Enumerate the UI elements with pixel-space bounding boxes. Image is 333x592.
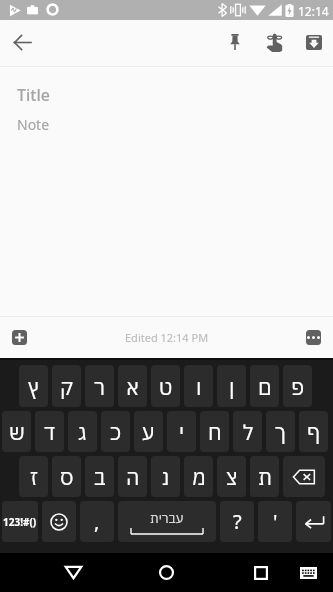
staticText: א	[126, 373, 140, 400]
staticText: 123!#()	[3, 515, 37, 529]
staticText: ל	[243, 418, 253, 445]
staticText: '	[273, 508, 278, 535]
staticText: צ	[226, 463, 238, 490]
button[interactable]: ,	[80, 501, 114, 542]
button[interactable]: פ	[283, 365, 312, 407]
button[interactable]: More options	[299, 323, 328, 352]
button[interactable]: ט	[151, 365, 180, 407]
button[interactable]: ה	[118, 456, 147, 497]
staticText: ת	[258, 463, 272, 490]
button[interactable]: '	[258, 501, 292, 542]
staticText: Note	[17, 115, 50, 134]
button[interactable]: ח	[200, 411, 229, 452]
staticText: ק	[60, 373, 73, 400]
staticText: ם	[258, 373, 272, 400]
button[interactable]: צ	[217, 456, 246, 497]
button[interactable]	[283, 456, 325, 497]
button[interactable]: Recents	[243, 555, 278, 590]
staticText: ב	[94, 463, 106, 490]
button[interactable]: Back	[5, 25, 39, 59]
button[interactable]: Back	[56, 555, 91, 590]
button[interactable]: ק	[52, 365, 81, 407]
staticText: ש	[9, 418, 25, 445]
staticText: ז	[30, 463, 38, 490]
staticText: ח	[208, 418, 222, 445]
button[interactable]: ד	[35, 411, 64, 452]
button[interactable]: ג	[68, 411, 97, 452]
button[interactable]: ת	[250, 456, 279, 497]
staticText: פ	[291, 373, 305, 400]
staticText: ו	[196, 373, 202, 400]
button[interactable]: ב	[85, 456, 114, 497]
staticText: י	[179, 418, 185, 445]
staticText: כ	[110, 418, 122, 445]
staticText: ר	[94, 373, 106, 400]
button[interactable]	[296, 501, 331, 542]
button[interactable]: א	[118, 365, 147, 407]
button[interactable]: Home	[149, 555, 184, 590]
staticText: עברית	[150, 510, 184, 527]
button[interactable]: כ	[101, 411, 130, 452]
button[interactable]: Show keyboard	[291, 555, 326, 590]
staticText: ?	[233, 508, 242, 535]
staticText: Title	[17, 84, 50, 106]
button[interactable]: ז	[19, 456, 48, 497]
button[interactable]: 123!#()	[2, 501, 38, 542]
staticText: ד	[44, 418, 56, 445]
button[interactable]: Remind me	[257, 25, 291, 59]
button[interactable]: ס	[52, 456, 81, 497]
staticText: ן	[229, 373, 235, 400]
button[interactable]: נ	[151, 456, 180, 497]
button[interactable]: ?	[220, 501, 254, 542]
button[interactable]: ל	[233, 411, 262, 452]
button[interactable]: Add	[5, 323, 34, 352]
staticText: ,	[94, 508, 100, 535]
button[interactable]: ע	[134, 411, 163, 452]
button[interactable]: ץ	[19, 365, 48, 407]
button[interactable]	[42, 501, 76, 542]
button[interactable]: ש	[2, 411, 31, 452]
staticText: ף	[307, 418, 321, 445]
button[interactable]: ן	[217, 365, 246, 407]
button[interactable]: ף	[299, 411, 328, 452]
button[interactable]: ו	[184, 365, 213, 407]
staticText: מ	[192, 463, 206, 490]
button[interactable]: ך	[266, 411, 295, 452]
staticText: נ	[162, 463, 170, 490]
button[interactable]: ר	[85, 365, 114, 407]
button[interactable]: מ	[184, 456, 213, 497]
staticText: ה	[126, 463, 140, 490]
staticText: ע	[142, 418, 155, 445]
staticText: ץ	[28, 373, 39, 400]
button[interactable]: ם	[250, 365, 279, 407]
button[interactable]: Archive	[297, 25, 331, 59]
button[interactable]: Pin	[218, 25, 252, 59]
button[interactable]: עברית	[118, 501, 216, 542]
button[interactable]: י	[167, 411, 196, 452]
staticText: ך	[275, 418, 286, 445]
staticText: ג	[78, 418, 87, 445]
staticText: ס	[60, 463, 74, 490]
staticText: ט	[159, 373, 173, 400]
staticText: 12:14	[298, 3, 329, 19]
staticText: Edited 12:14 PM	[125, 330, 209, 345]
